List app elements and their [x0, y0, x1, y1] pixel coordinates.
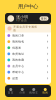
staticText: 购物车 — [29, 91, 38, 94]
staticText: 优惠券 — [12, 46, 21, 49]
staticText: 开通会员享专属权益 — [13, 25, 37, 32]
staticText: 我的钱包 — [12, 40, 24, 43]
staticText: 张小明 — [16, 14, 28, 19]
button[interactable]: 首页 — [5, 85, 16, 97]
staticText: 会员中心 — [12, 64, 24, 68]
button[interactable]: 会员中心 — [5, 63, 51, 69]
staticText: 分类 — [19, 91, 25, 94]
staticText: 签到 — [41, 17, 47, 20]
button[interactable]: 我的 — [39, 85, 51, 97]
staticText: 我的 — [42, 91, 48, 94]
button[interactable]: 分类 — [16, 85, 28, 97]
button[interactable]: 收货地址 — [5, 51, 51, 57]
button[interactable]: 帮助中心 — [5, 69, 51, 75]
button[interactable]: 签到 — [39, 16, 48, 21]
button[interactable]: 购物车 — [28, 85, 39, 97]
staticText: 我的订单 — [12, 34, 24, 37]
staticText: 收货地址 — [12, 52, 24, 55]
staticText: 帮助中心 — [12, 70, 24, 74]
staticText: VIP会员 — [16, 18, 27, 22]
button[interactable]: 优惠券 — [5, 45, 51, 51]
button[interactable]: 我的钱包 — [5, 39, 51, 45]
button[interactable]: 我的订单 — [5, 32, 51, 39]
staticText: 首页 — [8, 91, 14, 94]
staticText: 设置 — [12, 77, 18, 80]
staticText: 我的收藏 — [12, 58, 24, 62]
button[interactable]: 我的收藏 — [5, 57, 51, 63]
staticText: 用户中心 — [18, 3, 38, 10]
button[interactable]: 设置 — [5, 75, 51, 81]
